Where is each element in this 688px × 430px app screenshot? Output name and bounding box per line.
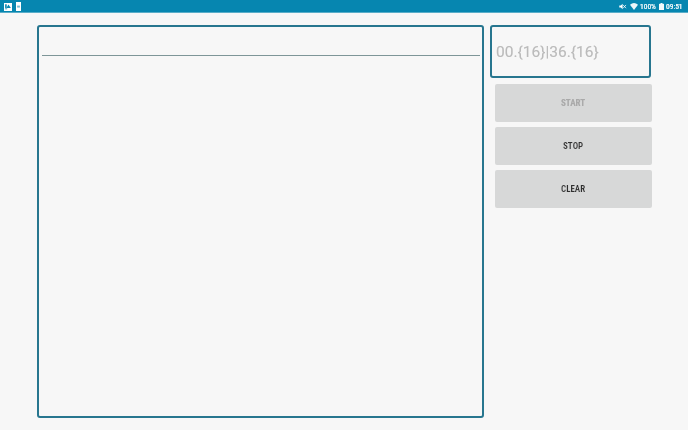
other: Battery full — [659, 3, 664, 10]
button[interactable]: CLEAR — [495, 170, 652, 208]
staticText: STOP — [563, 141, 584, 152]
button[interactable]: STOP — [495, 127, 652, 165]
staticText: 00.{16}|36.{16} — [496, 43, 599, 61]
other: Screenshot captured — [4, 3, 12, 11]
staticText: 100% — [640, 2, 656, 11]
button[interactable]: Log output — [37, 25, 484, 418]
staticText: CLEAR — [561, 184, 586, 195]
staticText: 09:51 — [666, 2, 683, 11]
other: Wi-Fi — [630, 3, 638, 10]
button[interactable]: 00.{16}|36.{16} — [490, 25, 651, 78]
button[interactable]: START — [495, 84, 652, 122]
other: Storage — [16, 2, 21, 11]
other: Sound muted — [619, 3, 626, 10]
staticText: START — [561, 98, 586, 109]
